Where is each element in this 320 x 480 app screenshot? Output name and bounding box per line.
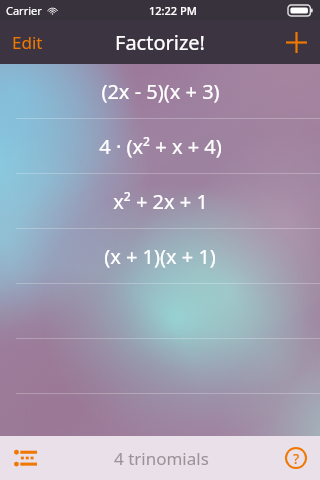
button[interactable]: (x + 1)(x + 1) xyxy=(0,229,320,284)
staticText: ? xyxy=(293,449,300,468)
button[interactable]: Edit xyxy=(0,20,55,64)
staticText: 4 · (x² + x + 4) xyxy=(99,133,222,160)
staticText: Edit xyxy=(12,31,43,54)
button[interactable]: x² + 2x + 1 xyxy=(0,174,320,229)
button[interactable]: Sort list xyxy=(0,436,51,480)
staticText: (2x - 5)(x + 3) xyxy=(101,78,220,105)
staticText: Carrier xyxy=(6,3,42,18)
button[interactable]: (2x - 5)(x + 3) xyxy=(0,64,320,119)
staticText: Factorize! xyxy=(115,29,205,56)
staticText: (x + 1)(x + 1) xyxy=(104,243,216,270)
staticText: 4 trinomials xyxy=(114,447,209,470)
button[interactable]: Add trinomial xyxy=(273,20,320,64)
button[interactable]: Help xyxy=(272,436,320,480)
button[interactable]: 4 · (x² + x + 4) xyxy=(0,119,320,174)
staticText: x² + 2x + 1 xyxy=(113,188,208,215)
staticText: 12:22 PM xyxy=(149,3,197,18)
